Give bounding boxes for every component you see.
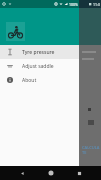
- staticText: 100%: [69, 2, 78, 7]
- button[interactable]: Recents: [72, 166, 86, 180]
- staticText: About: [22, 77, 37, 84]
- staticText: CALCULATE: [82, 145, 101, 155]
- button[interactable]: Calculate: [82, 145, 101, 155]
- staticText: Adjust saddle: [22, 63, 54, 70]
- button[interactable]: Tyre pressure: [0, 45, 79, 59]
- button[interactable]: Back: [15, 166, 29, 180]
- button[interactable]: About: [0, 73, 79, 87]
- staticText: 11:0: [93, 2, 100, 7]
- button[interactable]: Adjust saddle: [0, 59, 79, 73]
- staticText: Tyre pressure: [22, 49, 55, 56]
- button[interactable]: Home: [44, 166, 58, 180]
